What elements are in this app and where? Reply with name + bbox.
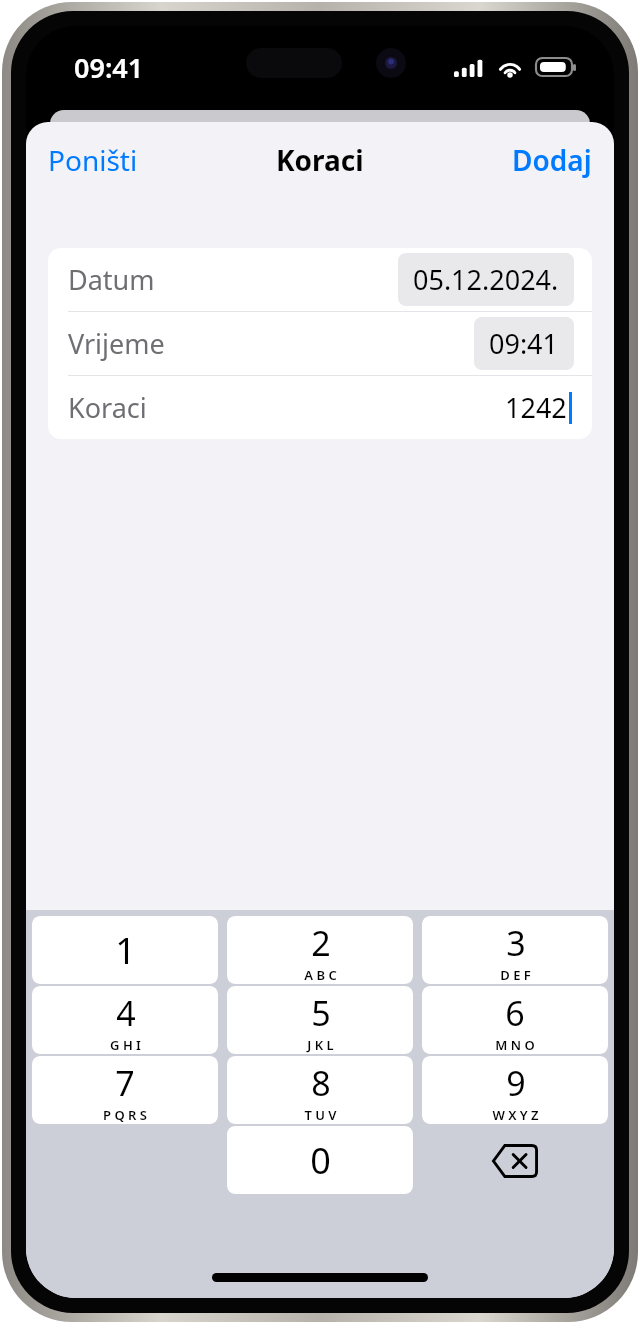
staticText: Koraci — [68, 389, 147, 426]
button[interactable]: 09:41 — [474, 317, 574, 370]
button[interactable]: Backspace — [422, 1126, 608, 1196]
staticText: D E F — [500, 966, 531, 984]
button[interactable]: 05.12.2024. — [398, 253, 574, 306]
staticText: 3 — [506, 920, 526, 966]
button[interactable]: 1 — [32, 916, 218, 984]
button[interactable]: 3 — [422, 916, 608, 984]
button[interactable]: 0 — [227, 1126, 413, 1194]
button[interactable]: 6 — [422, 986, 608, 1054]
button[interactable]: 4 — [32, 986, 218, 1054]
staticText: 05.12.2024. — [413, 261, 559, 298]
staticText: A B C — [304, 966, 337, 984]
staticText: Poništi — [48, 141, 138, 179]
staticText: 1 — [115, 926, 136, 975]
staticText: 9 — [506, 1060, 526, 1106]
staticText: 09:41 — [489, 325, 559, 362]
staticText: 09:41 — [74, 49, 144, 86]
staticText: 8 — [311, 1060, 331, 1106]
button[interactable]: 2 — [227, 916, 413, 984]
button[interactable]: Poništi — [26, 133, 152, 187]
staticText: W X Y Z — [492, 1106, 539, 1124]
button[interactable]: Dodaj — [498, 133, 614, 187]
staticText: M N O — [495, 1036, 535, 1054]
staticText: Vrijeme — [68, 325, 165, 362]
button[interactable]: 9 — [422, 1056, 608, 1124]
staticText: T U V — [304, 1106, 337, 1124]
staticText: Datum — [68, 261, 155, 298]
staticText: Dodaj — [512, 141, 592, 179]
staticText: Koraci — [276, 141, 364, 179]
staticText: 4 — [116, 990, 136, 1036]
staticText: 2 — [311, 920, 331, 966]
staticText: P Q R S — [103, 1106, 147, 1124]
staticText: 7 — [115, 1060, 135, 1106]
staticText: G H I — [110, 1036, 141, 1054]
staticText: 1242 — [505, 389, 567, 426]
staticText: 6 — [505, 990, 525, 1036]
button[interactable]: 5 — [227, 986, 413, 1054]
button[interactable]: 1242 — [505, 389, 574, 426]
staticText: J K L — [307, 1036, 334, 1054]
staticText: 5 — [311, 990, 331, 1036]
staticText: 0 — [310, 1136, 331, 1185]
button[interactable]: 8 — [227, 1056, 413, 1124]
button[interactable]: 7 — [32, 1056, 218, 1124]
